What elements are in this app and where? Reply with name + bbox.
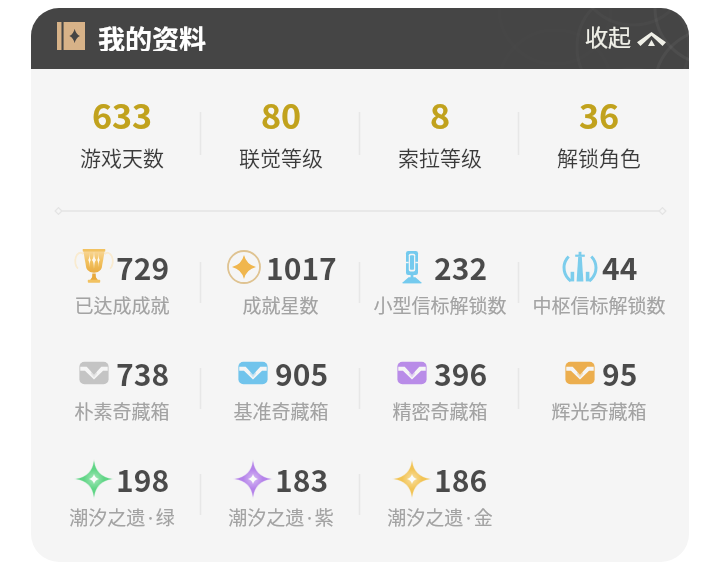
button[interactable]: 905 xyxy=(201,351,360,439)
staticText: 精密奇藏箱 xyxy=(392,397,488,425)
button[interactable]: 633 xyxy=(42,90,201,178)
button[interactable]: 36 xyxy=(519,90,678,178)
button[interactable]: 729 xyxy=(42,245,201,333)
staticText: 905 xyxy=(275,351,329,394)
staticText: 解锁角色 xyxy=(557,142,641,172)
button[interactable]: 738 xyxy=(42,351,201,439)
staticText: 198 xyxy=(116,457,170,500)
staticText: 朴素奇藏箱 xyxy=(74,397,170,425)
button[interactable]: 收起 xyxy=(585,20,666,54)
button[interactable]: 我的资料 xyxy=(57,20,206,52)
staticText: 中枢信标解锁数 xyxy=(532,291,666,319)
button[interactable]: 44 xyxy=(519,245,678,333)
staticText: 潮汐之遗·紫 xyxy=(228,503,334,531)
button[interactable]: 8 xyxy=(360,90,519,178)
staticText: 186 xyxy=(434,457,488,500)
staticText: 小型信标解锁数 xyxy=(373,291,507,319)
staticText: 辉光奇藏箱 xyxy=(551,397,647,425)
button[interactable]: 232 xyxy=(360,245,519,333)
staticText: 基准奇藏箱 xyxy=(233,397,329,425)
button[interactable]: 198 xyxy=(42,457,201,545)
button[interactable]: 186 xyxy=(360,457,519,545)
staticText: 738 xyxy=(116,351,170,394)
staticText: 183 xyxy=(275,457,329,500)
staticText: 成就星数 xyxy=(242,291,319,319)
button[interactable]: 1017 xyxy=(201,245,360,333)
staticText: 396 xyxy=(434,351,488,394)
staticText: 44 xyxy=(602,245,638,288)
staticText: 232 xyxy=(434,245,488,288)
staticText: 我的资料 xyxy=(98,19,206,51)
staticText: 已达成成就 xyxy=(74,291,170,319)
button[interactable]: 95 xyxy=(519,351,678,439)
staticText: 95 xyxy=(602,351,638,394)
staticText: 联觉等级 xyxy=(239,142,323,172)
staticText: 633 xyxy=(92,90,153,139)
staticText: 潮汐之遗·金 xyxy=(387,503,493,531)
staticText: 潮汐之遗·绿 xyxy=(69,503,175,531)
button[interactable]: 396 xyxy=(360,351,519,439)
staticText: 80 xyxy=(261,90,302,139)
staticText: 游戏天数 xyxy=(80,142,164,172)
staticText: 1017 xyxy=(266,245,337,288)
staticText: 索拉等级 xyxy=(398,142,482,172)
staticText: 36 xyxy=(579,90,620,139)
staticText: 729 xyxy=(116,245,170,288)
button[interactable]: 80 xyxy=(201,90,360,178)
staticText: 8 xyxy=(430,90,451,139)
button[interactable]: 183 xyxy=(201,457,360,545)
staticText: 收起 xyxy=(585,19,631,52)
